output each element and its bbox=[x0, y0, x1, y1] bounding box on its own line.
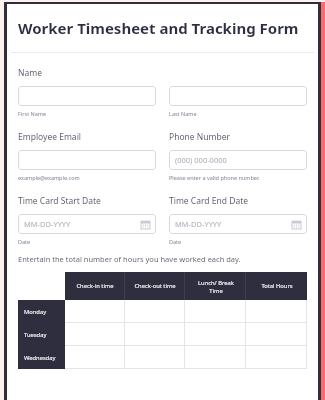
button[interactable] bbox=[18, 150, 156, 170]
button[interactable]: Check-in time bbox=[65, 272, 125, 300]
button[interactable] bbox=[65, 323, 125, 346]
button[interactable] bbox=[246, 323, 307, 346]
staticText: Name bbox=[18, 67, 42, 79]
staticText: Time Card End Date bbox=[169, 195, 249, 207]
staticText: Last Name bbox=[169, 110, 197, 117]
staticText: Monday bbox=[24, 308, 47, 316]
button[interactable]: Open calendar bbox=[141, 220, 150, 229]
staticText: Tuesday bbox=[24, 331, 47, 339]
staticText: MM-DD-YYYY bbox=[24, 219, 71, 229]
button[interactable] bbox=[246, 346, 307, 369]
staticText: Total Hours bbox=[261, 282, 293, 290]
button[interactable]: Check-out time bbox=[125, 272, 185, 300]
staticText: Check-in time bbox=[76, 282, 114, 290]
button[interactable] bbox=[246, 300, 307, 323]
staticText: Employee Email bbox=[18, 131, 82, 143]
button[interactable]: MM-DD-YYYY bbox=[18, 214, 156, 234]
button[interactable] bbox=[185, 323, 246, 346]
staticText: Check-out time bbox=[134, 282, 176, 290]
staticText: Wednesday bbox=[24, 354, 56, 362]
button[interactable]: Wednesday bbox=[18, 346, 65, 369]
staticText: Worker Timesheet and Tracking Form bbox=[18, 18, 299, 38]
button[interactable] bbox=[125, 323, 185, 346]
button[interactable] bbox=[169, 86, 307, 106]
staticText: Date bbox=[169, 238, 182, 245]
staticText: Time Card Start Date bbox=[18, 195, 101, 207]
button[interactable]: Total Hours bbox=[246, 272, 307, 300]
staticText: Date bbox=[18, 238, 31, 245]
staticText: Please enter a valid phone number. bbox=[169, 174, 260, 181]
staticText: MM-DD-YYYY bbox=[175, 219, 222, 229]
staticText: Entertain the total number of hours you … bbox=[18, 254, 241, 264]
button[interactable] bbox=[185, 300, 246, 323]
button[interactable] bbox=[18, 86, 156, 106]
button[interactable] bbox=[125, 300, 185, 323]
staticText: (000) 000-0000 bbox=[175, 155, 227, 165]
staticText: example@example.com bbox=[18, 174, 80, 181]
button[interactable]: Open calendar bbox=[292, 220, 301, 229]
button[interactable]: Monday bbox=[18, 300, 65, 323]
button[interactable]: (000) 000-0000 bbox=[169, 150, 307, 170]
staticText: First Name bbox=[18, 110, 47, 117]
button[interactable] bbox=[65, 346, 125, 369]
button[interactable]: Tuesday bbox=[18, 323, 65, 346]
button[interactable] bbox=[65, 300, 125, 323]
staticText: Phone Number bbox=[169, 131, 230, 143]
button[interactable]: Lunch/ Break Time bbox=[185, 272, 246, 300]
button[interactable] bbox=[125, 346, 185, 369]
button[interactable] bbox=[185, 346, 246, 369]
staticText: Lunch/ Break Time bbox=[198, 279, 234, 294]
button[interactable]: MM-DD-YYYY bbox=[169, 214, 307, 234]
